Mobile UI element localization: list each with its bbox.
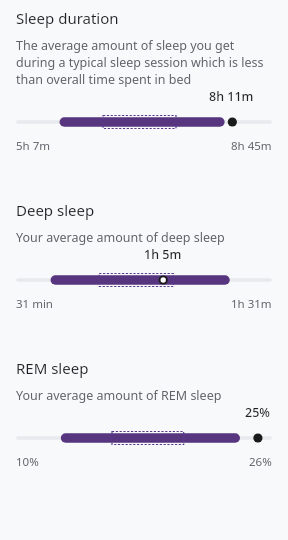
- staticText: 1h 5m: [144, 246, 182, 263]
- staticText: Deep sleep: [16, 200, 95, 220]
- staticText: 25%: [245, 404, 270, 421]
- staticText: Sleep duration: [16, 8, 119, 28]
- staticText: 31 min: [16, 296, 53, 312]
- staticText: 8h 45m: [231, 138, 272, 154]
- staticText: 10%: [16, 454, 39, 470]
- staticText: The average amount of sleep you get duri…: [16, 37, 272, 88]
- staticText: Your average amount of deep sleep: [16, 229, 225, 246]
- staticText: REM sleep: [16, 358, 89, 378]
- staticText: 1h 31m: [231, 296, 272, 312]
- staticText: 26%: [249, 454, 272, 470]
- staticText: 8h 11m: [209, 88, 254, 105]
- staticText: Your average amount of REM sleep: [16, 387, 222, 404]
- staticText: 5h 7m: [16, 138, 51, 154]
